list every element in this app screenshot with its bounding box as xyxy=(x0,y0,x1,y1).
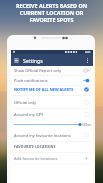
staticText: NOTIFY ME OF ALL NEW ALERTS xyxy=(14,87,82,92)
staticText: FAVOURITE LOCATIONS xyxy=(14,144,82,149)
staticText: Show Official Report only xyxy=(14,68,82,73)
staticText: Add favourite locations xyxy=(14,156,82,161)
staticText: Settings xyxy=(23,57,43,64)
staticText: Push notifications xyxy=(14,78,82,83)
button[interactable]: Around my GPS xyxy=(11,110,93,119)
staticText: Around my GPS xyxy=(14,112,82,117)
button[interactable]: Show Official Report only xyxy=(11,66,93,75)
button[interactable]: Push notifications xyxy=(11,76,93,85)
button[interactable]: FAVOURITE LOCATIONS xyxy=(11,142,93,151)
button[interactable]: Alert radius slider xyxy=(11,120,93,129)
staticText: RECEIVE ALERTS BASED ON CURRENT LOCATION… xyxy=(0,2,103,23)
button[interactable]: Around my favourite locations xyxy=(11,131,93,140)
button[interactable]: Open navigation menu xyxy=(12,56,21,65)
button[interactable]: NOTIFY ME OF ALL NEW ALERTS xyxy=(11,85,93,94)
button[interactable]: Add favourite locations xyxy=(11,154,93,163)
button[interactable]: Official only xyxy=(11,98,93,107)
staticText: 50km xyxy=(82,122,91,127)
button[interactable]: More options xyxy=(83,56,92,65)
staticText: Official only xyxy=(14,100,82,105)
staticText: Around my favourite locations xyxy=(14,133,82,138)
